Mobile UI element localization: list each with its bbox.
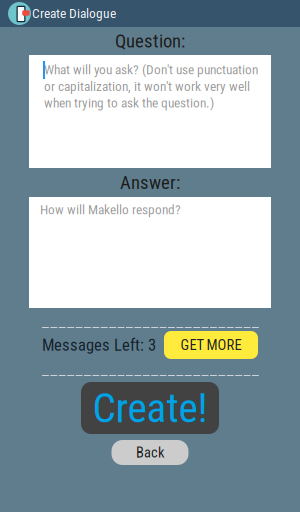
staticText: Question:	[115, 30, 185, 52]
staticText: Answer:	[120, 172, 180, 193]
button[interactable]: GET MORE	[164, 331, 258, 359]
button[interactable]: Back	[111, 440, 188, 465]
staticText: What will you ask? (Don't use punctuatio…	[44, 62, 258, 111]
button[interactable]: Create!	[81, 382, 219, 434]
button[interactable]: How will Makello respond?	[29, 197, 271, 308]
button[interactable]: What will you ask? (Don't use punctuatio…	[29, 55, 271, 168]
staticText: How will Makello respond?	[40, 202, 181, 218]
staticText: Create!	[92, 384, 207, 432]
staticText: Back	[136, 444, 164, 461]
staticText: Messages Left: 3	[42, 335, 156, 355]
staticText: Create Dialogue	[32, 6, 116, 21]
staticText: GET MORE	[180, 336, 241, 354]
